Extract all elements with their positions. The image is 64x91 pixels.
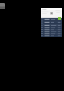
button[interactable]: [43, 18, 62, 21]
button[interactable]: [41, 8, 62, 18]
button[interactable]: [43, 33, 62, 35]
button[interactable]: Menu: [0, 3, 5, 9]
button[interactable]: [43, 21, 62, 24]
button[interactable]: [43, 31, 62, 33]
button[interactable]: [43, 24, 62, 27]
button[interactable]: [43, 27, 62, 29]
button[interactable]: [43, 35, 62, 37]
button[interactable]: [43, 29, 62, 31]
